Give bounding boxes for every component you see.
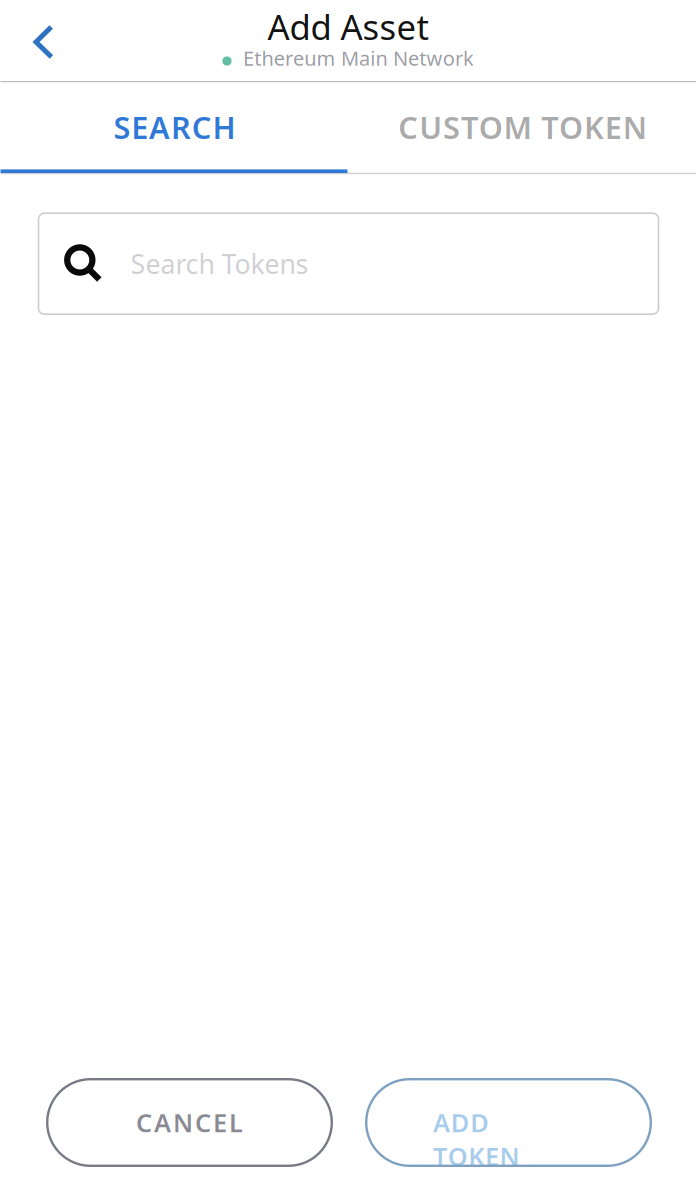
staticText: SEARCH bbox=[113, 107, 236, 147]
staticText: CANCEL bbox=[136, 1106, 243, 1139]
button[interactable]: ADD TOKEN bbox=[365, 1078, 652, 1167]
staticText: CUSTOM TOKEN bbox=[398, 107, 647, 147]
button[interactable]: CANCEL bbox=[46, 1078, 333, 1167]
staticText: Search Tokens bbox=[130, 246, 308, 281]
staticText: Ethereum Main Network bbox=[243, 45, 474, 71]
button[interactable]: CUSTOM TOKEN bbox=[348, 82, 696, 174]
button[interactable]: Back bbox=[0, 0, 82, 81]
button[interactable]: SEARCH bbox=[0, 82, 348, 174]
staticText: ADD TOKEN bbox=[433, 1106, 584, 1139]
staticText: Add Asset bbox=[267, 3, 429, 49]
